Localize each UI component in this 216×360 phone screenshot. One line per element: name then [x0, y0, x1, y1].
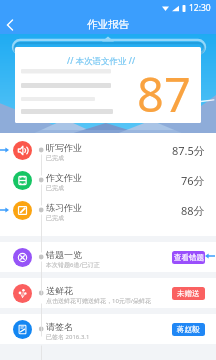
staticText: 蒋赵毅 — [177, 325, 200, 334]
staticText: 76分 — [181, 173, 205, 188]
button[interactable]: 查看错题 — [172, 251, 205, 264]
staticText: 请签名 — [46, 321, 73, 332]
staticText: 练习作业 — [46, 202, 82, 213]
button[interactable]: 练习作业 — [0, 195, 216, 225]
staticText: 未赠送 — [177, 289, 200, 298]
staticText: 错题一览 — [46, 249, 82, 260]
staticText: 12:30 — [189, 2, 211, 14]
staticText: 已完成 — [46, 184, 64, 192]
staticText: 查看错题 — [174, 253, 204, 262]
staticText: 87 — [137, 62, 191, 123]
staticText: 听写作业 — [46, 142, 82, 153]
staticText: 88分 — [181, 203, 205, 218]
button[interactable]: 作文作业 — [0, 165, 216, 195]
staticText: 87.5分 — [172, 143, 205, 158]
button[interactable]: 错题一览 — [0, 242, 216, 272]
staticText: 已完成 — [46, 214, 64, 222]
button[interactable]: Back — [0, 15, 19, 34]
staticText: 已签名 2016.3.1 — [46, 333, 90, 341]
staticText: 点击送鲜花可赠送鲜花，10元币/朵鲜花 — [46, 297, 152, 305]
button[interactable]: 未赠送 — [172, 287, 205, 300]
staticText: // 本次语文作业 // — [67, 55, 136, 67]
staticText: 本次错题6道/已订正 — [46, 261, 100, 269]
button[interactable]: 送鲜花 — [0, 278, 216, 308]
button[interactable]: 请签名 — [0, 314, 216, 344]
button[interactable]: 听写作业 — [0, 135, 216, 165]
button[interactable]: 蒋赵毅 — [172, 323, 205, 336]
staticText: 作文作业 — [46, 172, 82, 183]
staticText: 送鲜花 — [46, 285, 73, 296]
staticText: 作业报告 — [87, 18, 129, 31]
staticText: 已完成 — [46, 154, 64, 162]
